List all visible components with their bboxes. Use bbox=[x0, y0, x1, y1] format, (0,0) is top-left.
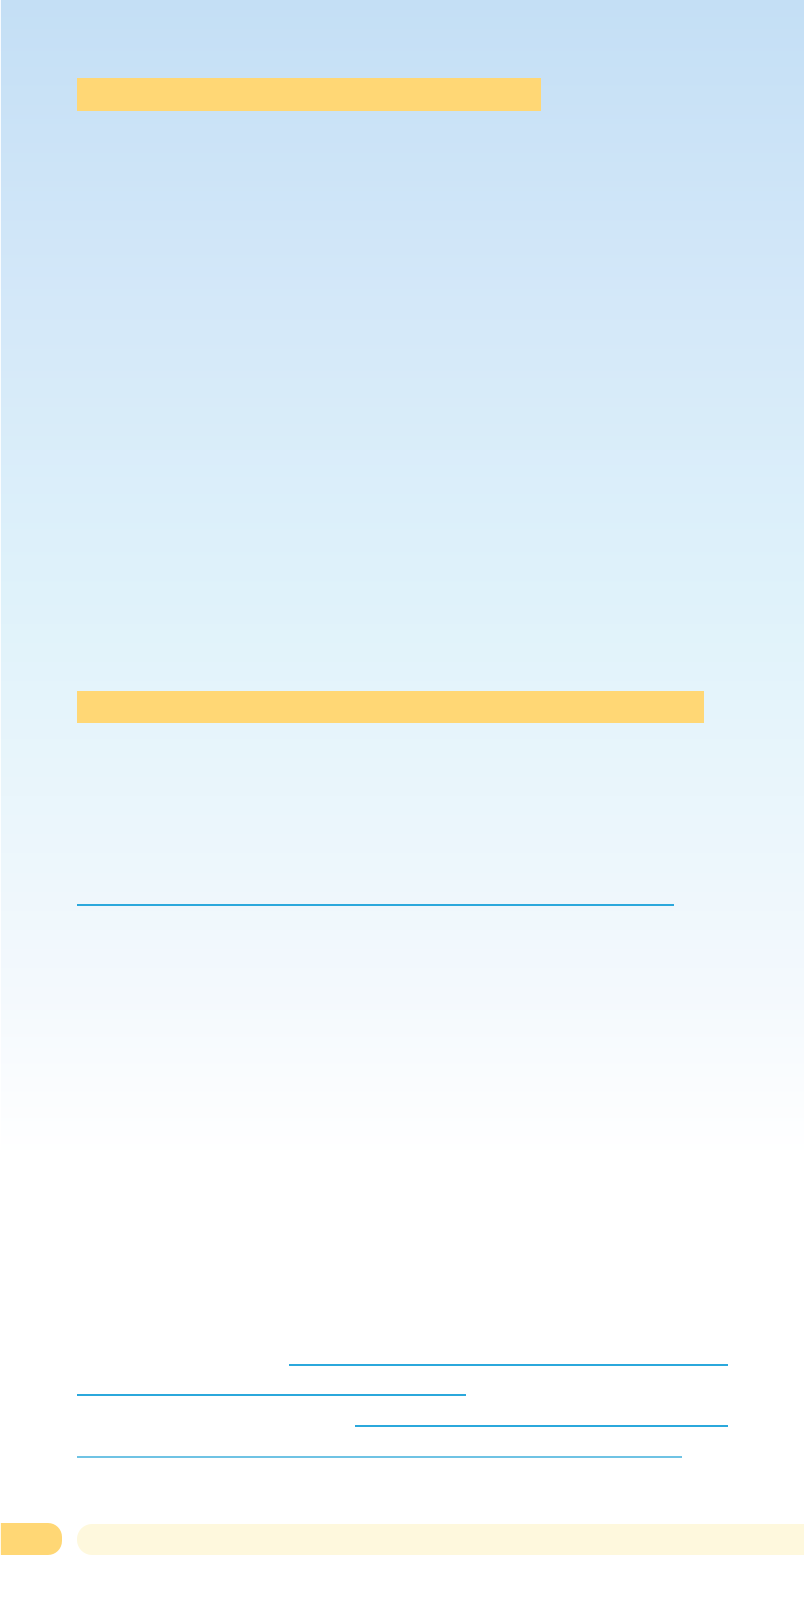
button[interactable]: Tag bbox=[0, 1523, 62, 1555]
